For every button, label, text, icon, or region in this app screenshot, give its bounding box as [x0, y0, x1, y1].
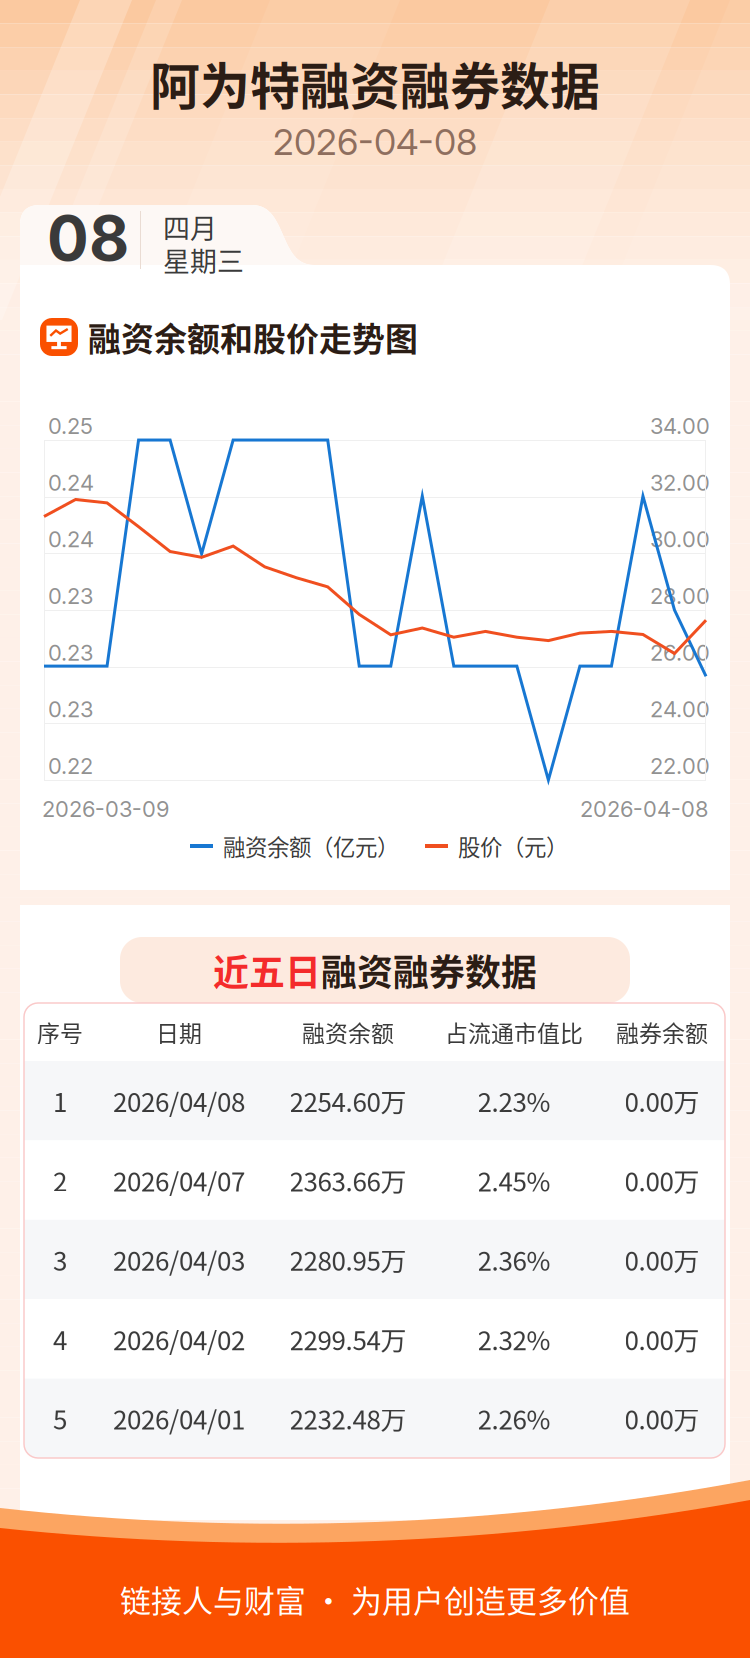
staticText: 链接人与财富 · 为用户创造更多价值	[120, 1577, 630, 1621]
staticText: 近五日	[213, 944, 321, 996]
staticText: 占流通市值比	[445, 1015, 583, 1049]
staticText: 2026/04/07	[113, 1161, 245, 1199]
staticText: 22.00	[650, 753, 710, 779]
staticText: 0.23	[48, 696, 93, 723]
staticText: 08	[47, 201, 129, 275]
staticText: 0.00万	[624, 1082, 699, 1119]
staticText: 2026/04/03	[113, 1241, 245, 1278]
staticText: 32.00	[650, 469, 710, 496]
staticText: 0.23	[48, 583, 93, 609]
staticText: 2363.66万	[289, 1161, 406, 1199]
staticText: 3	[53, 1241, 67, 1278]
staticText: 融资融券数据	[321, 944, 537, 996]
staticText: 0.00万	[624, 1241, 699, 1278]
staticText: 0.00万	[624, 1399, 699, 1437]
staticText: 2280.95万	[289, 1241, 406, 1278]
staticText: 四月	[163, 207, 217, 246]
staticText: 股价（元）	[458, 830, 568, 862]
staticText: 2026/04/02	[113, 1320, 245, 1358]
staticText: 2254.60万	[289, 1082, 406, 1119]
staticText: 2	[53, 1161, 67, 1199]
staticText: 26.00	[650, 639, 710, 666]
staticText: 1	[53, 1082, 67, 1119]
staticText: 2.23%	[477, 1082, 550, 1119]
staticText: 2026-03-09	[42, 796, 169, 822]
staticText: 2.26%	[477, 1399, 550, 1437]
staticText: 5	[53, 1399, 67, 1437]
staticText: 2026-04-08	[273, 120, 477, 164]
staticText: 0.00万	[624, 1320, 699, 1358]
staticText: 2026/04/08	[113, 1082, 245, 1119]
staticText: 0.00万	[624, 1161, 699, 1199]
staticText: 0.24	[48, 526, 94, 553]
staticText: 融资余额	[302, 1015, 394, 1049]
staticText: 2.32%	[477, 1320, 550, 1358]
staticText: 28.00	[650, 583, 710, 609]
staticText: 0.23	[48, 639, 93, 666]
staticText: 星期三	[163, 240, 244, 279]
staticText: 4	[53, 1320, 67, 1358]
staticText: 0.25	[48, 413, 93, 439]
staticText: 2299.54万	[289, 1320, 406, 1358]
staticText: 2026-04-08	[580, 796, 708, 822]
staticText: 2232.48万	[289, 1399, 406, 1437]
staticText: 30.00	[650, 526, 710, 553]
staticText: 阿为特融资融券数据	[150, 47, 600, 119]
staticText: 0.22	[48, 753, 93, 779]
staticText: 序号	[37, 1015, 83, 1049]
staticText: 34.00	[650, 413, 710, 439]
staticText: 日期	[156, 1015, 202, 1049]
staticText: 24.00	[650, 696, 710, 723]
staticText: 融资余额和股价走势图	[88, 313, 418, 361]
staticText: 融券余额	[616, 1015, 708, 1049]
staticText: 2026/04/01	[113, 1399, 245, 1437]
staticText: 0.24	[48, 469, 94, 496]
staticText: 2.36%	[477, 1241, 550, 1278]
staticText: 2.45%	[477, 1161, 550, 1199]
staticText: 融资余额（亿元）	[223, 830, 399, 862]
